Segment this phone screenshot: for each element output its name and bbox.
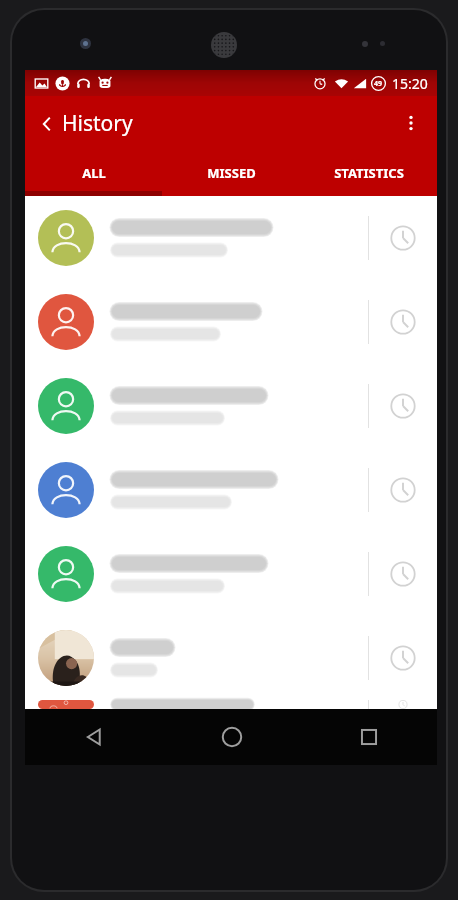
staticText: History: [62, 109, 133, 138]
button[interactable]: More options: [389, 101, 433, 145]
button[interactable]: Home: [163, 709, 300, 765]
button[interactable]: MISSED: [163, 150, 300, 196]
button[interactable]: Call details: [25, 532, 437, 616]
button[interactable]: Call details: [369, 448, 437, 532]
staticText: STATISTICS: [334, 164, 404, 182]
button[interactable]: Call details: [369, 616, 437, 700]
staticText: MISSED: [207, 164, 256, 182]
button[interactable]: Call details: [369, 364, 437, 448]
button[interactable]: Call details: [25, 700, 437, 709]
staticText: ALL: [82, 164, 106, 182]
button[interactable]: STATISTICS: [300, 150, 437, 196]
button[interactable]: Call details: [369, 280, 437, 364]
button[interactable]: Call details: [25, 616, 437, 700]
staticText: 49: [374, 79, 383, 89]
button[interactable]: Recent apps: [300, 709, 437, 765]
button[interactable]: Call details: [369, 196, 437, 280]
button[interactable]: Call details: [369, 700, 437, 709]
button[interactable]: Call details: [25, 448, 437, 532]
button[interactable]: ALL: [25, 150, 163, 196]
button[interactable]: Call details: [25, 196, 437, 280]
button[interactable]: Call details: [369, 532, 437, 616]
button[interactable]: Call details: [25, 364, 437, 448]
button[interactable]: Call details: [25, 280, 437, 364]
button[interactable]: History: [33, 103, 137, 144]
button[interactable]: Back: [25, 709, 163, 765]
staticText: 15:20: [392, 74, 428, 93]
